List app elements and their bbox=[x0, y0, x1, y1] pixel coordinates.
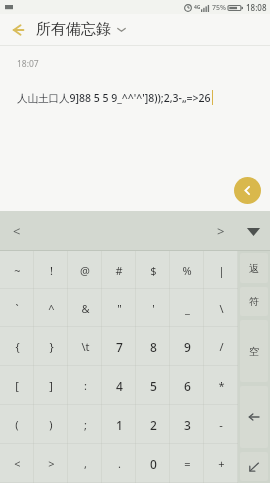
button[interactable]: 所有備忘錄 bbox=[36, 20, 127, 39]
staticText: } bbox=[49, 339, 54, 354]
button[interactable]: * bbox=[204, 366, 238, 405]
button[interactable]: < bbox=[0, 444, 34, 483]
button[interactable]: - bbox=[204, 405, 238, 444]
button[interactable]: # bbox=[102, 251, 136, 289]
staticText: 0 bbox=[150, 456, 157, 472]
staticText: . bbox=[118, 456, 121, 471]
staticText: = bbox=[184, 456, 191, 471]
button[interactable]: $ bbox=[136, 251, 170, 289]
button[interactable]: > bbox=[34, 444, 68, 483]
staticText: / bbox=[219, 339, 224, 354]
button[interactable]: [ bbox=[0, 366, 34, 405]
staticText: ! bbox=[50, 263, 53, 278]
staticText: 8 bbox=[150, 339, 157, 355]
button[interactable]: ; bbox=[68, 405, 102, 444]
button[interactable]: 6 bbox=[170, 366, 204, 405]
staticText: ~ bbox=[14, 263, 21, 278]
button[interactable]: \ bbox=[204, 289, 238, 327]
button[interactable]: Space bbox=[240, 320, 268, 382]
staticText: ) bbox=[49, 417, 53, 432]
staticText: @ bbox=[80, 263, 90, 278]
button[interactable]: ` bbox=[0, 289, 34, 327]
button[interactable]: " bbox=[102, 289, 136, 327]
button[interactable]: Enter bbox=[240, 452, 268, 481]
button[interactable]: 8 bbox=[136, 327, 170, 366]
button[interactable]: ] bbox=[34, 366, 68, 405]
button[interactable]: & bbox=[68, 289, 102, 327]
button[interactable]: @ bbox=[68, 251, 102, 289]
button[interactable]: 返 bbox=[240, 253, 268, 283]
staticText: * bbox=[218, 378, 225, 393]
staticText: 4 bbox=[116, 378, 123, 394]
button[interactable]: 7 bbox=[102, 327, 136, 366]
staticText: | bbox=[218, 263, 225, 278]
staticText: # bbox=[115, 263, 123, 278]
button[interactable]: \t bbox=[68, 327, 102, 366]
staticText: 9 bbox=[184, 339, 191, 355]
staticText: { bbox=[15, 339, 20, 354]
staticText: > bbox=[48, 456, 55, 471]
staticText: " bbox=[117, 301, 122, 316]
button[interactable]: : bbox=[68, 366, 102, 405]
button[interactable]: 9 bbox=[170, 327, 204, 366]
button[interactable]: + bbox=[204, 444, 238, 483]
button[interactable]: Hide keyboard bbox=[236, 211, 270, 251]
staticText: ( bbox=[15, 417, 19, 432]
button[interactable]: _ bbox=[170, 289, 204, 327]
staticText: 18:07 bbox=[17, 58, 39, 70]
button[interactable]: ~ bbox=[0, 251, 34, 289]
button[interactable]: ) bbox=[34, 405, 68, 444]
staticText: & bbox=[81, 301, 90, 316]
button[interactable]: Next candidate bbox=[206, 211, 236, 251]
button[interactable]: 3 bbox=[170, 405, 204, 444]
staticText: 7 bbox=[116, 339, 123, 355]
button[interactable]: Backspace bbox=[240, 386, 268, 448]
button[interactable]: ( bbox=[0, 405, 34, 444]
button[interactable]: . bbox=[102, 444, 136, 483]
button[interactable]: , bbox=[68, 444, 102, 483]
button[interactable]: { bbox=[0, 327, 34, 366]
button[interactable]: ! bbox=[34, 251, 68, 289]
button[interactable]: / bbox=[204, 327, 238, 366]
staticText: 5 bbox=[150, 378, 157, 394]
staticText: - bbox=[219, 417, 223, 432]
staticText: % bbox=[182, 263, 192, 278]
button[interactable]: 1 bbox=[102, 405, 136, 444]
staticText: 符 bbox=[249, 295, 259, 308]
button[interactable]: } bbox=[34, 327, 68, 366]
staticText: ' bbox=[152, 301, 155, 316]
staticText: \ bbox=[219, 301, 224, 316]
staticText: 18:08 bbox=[246, 2, 267, 13]
staticText: ; bbox=[84, 417, 87, 432]
button[interactable]: Previous bbox=[234, 177, 261, 204]
button[interactable]: 2 bbox=[136, 405, 170, 444]
staticText: 2 bbox=[150, 417, 157, 433]
staticText: ] bbox=[49, 378, 53, 393]
staticText: 返 bbox=[249, 262, 259, 275]
staticText: [ bbox=[15, 378, 19, 393]
staticText: 3 bbox=[184, 417, 191, 433]
staticText: > bbox=[217, 222, 225, 240]
button[interactable]: 符 bbox=[240, 287, 268, 316]
staticText: 空 bbox=[249, 345, 259, 358]
staticText: \t bbox=[81, 339, 90, 354]
staticText: 1 bbox=[116, 417, 123, 433]
button[interactable]: 4 bbox=[102, 366, 136, 405]
staticText: < bbox=[13, 222, 21, 240]
button[interactable]: 0 bbox=[136, 444, 170, 483]
button[interactable]: Previous candidate bbox=[0, 211, 34, 251]
button[interactable]: ' bbox=[136, 289, 170, 327]
staticText: 75% bbox=[212, 3, 226, 13]
staticText: _ bbox=[185, 301, 190, 316]
staticText: $ bbox=[150, 263, 157, 278]
staticText: 人山土口人9]88 5 5 9_^^'^']8));2,3-„=>26 bbox=[17, 91, 211, 105]
button[interactable]: ^ bbox=[34, 289, 68, 327]
button[interactable]: | bbox=[204, 251, 238, 289]
staticText: 所有備忘錄 bbox=[36, 20, 111, 39]
button[interactable]: 5 bbox=[136, 366, 170, 405]
staticText: 4G bbox=[194, 4, 201, 11]
button[interactable]: Back bbox=[0, 14, 36, 45]
staticText: : bbox=[84, 378, 87, 393]
button[interactable]: % bbox=[170, 251, 204, 289]
button[interactable]: = bbox=[170, 444, 204, 483]
